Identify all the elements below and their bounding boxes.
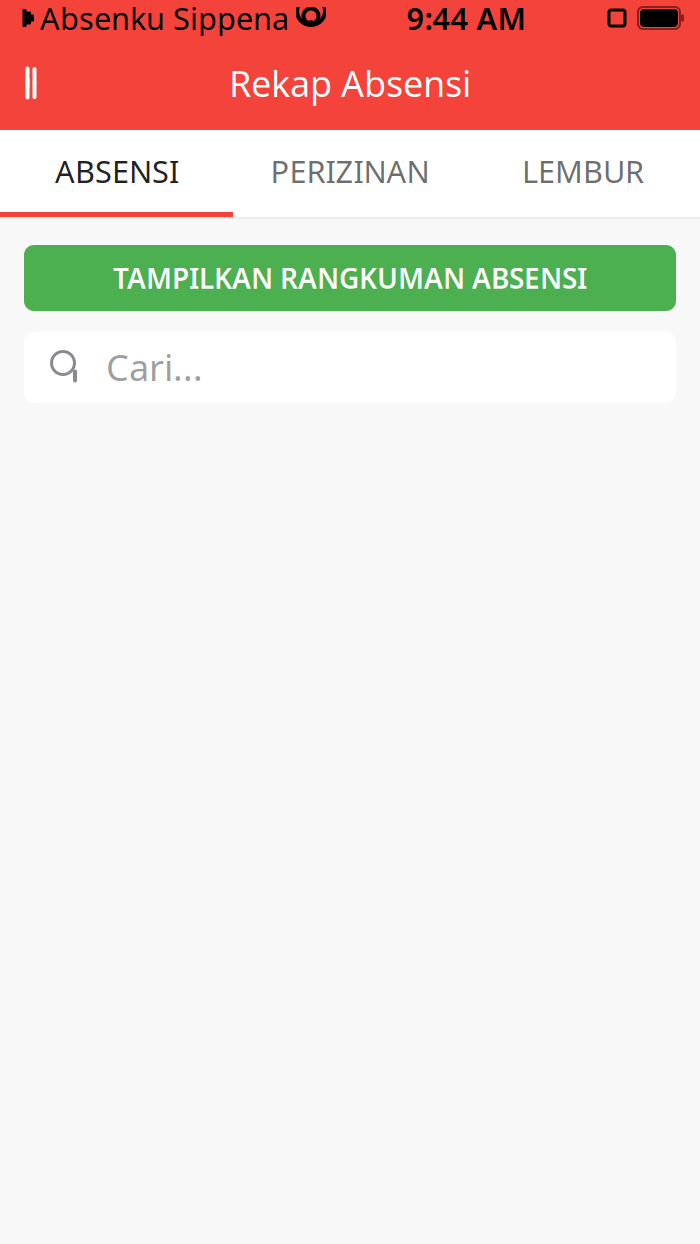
button[interactable]: Back <box>0 53 64 113</box>
button[interactable]: TAMPILKAN RANGKUMAN ABSENSI <box>24 245 676 311</box>
staticText: LEMBUR <box>522 151 644 191</box>
button[interactable]: PERIZINAN <box>233 130 466 212</box>
staticText: TAMPILKAN RANGKUMAN ABSENSI <box>113 259 587 297</box>
button[interactable]: LEMBUR <box>466 130 699 212</box>
staticText: Rekap Absensi <box>229 59 471 107</box>
staticText: ABSENSI <box>55 151 179 191</box>
staticText: Absenku Sippena <box>40 0 289 38</box>
button[interactable]: ABSENSI <box>0 130 233 212</box>
button[interactable]: Cari... <box>24 331 676 403</box>
staticText: 9:44 AM <box>406 0 525 38</box>
staticText: Cari... <box>106 343 203 391</box>
staticText: PERIZINAN <box>270 151 429 191</box>
